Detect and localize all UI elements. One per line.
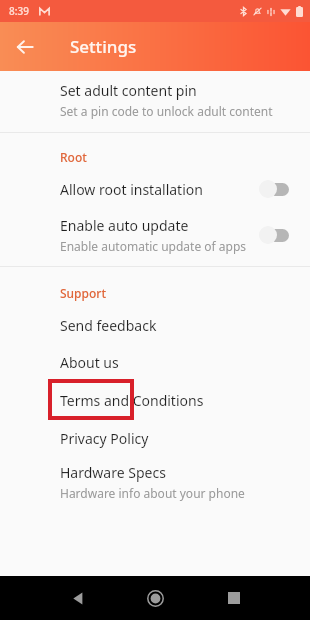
button[interactable]: Hardware Specs <box>0 463 310 501</box>
staticText: 8:39 <box>9 4 29 18</box>
button[interactable]: Terms and Conditions <box>0 391 310 410</box>
staticText: Privacy Policy <box>60 429 149 448</box>
button[interactable]: Allow root installation <box>0 179 310 199</box>
button[interactable]: Send feedback <box>0 316 310 335</box>
staticText: Root <box>60 149 87 165</box>
staticText: Set adult content pin <box>60 81 197 100</box>
staticText: Support <box>60 285 107 301</box>
staticText: Allow root installation <box>60 180 203 199</box>
button[interactable]: Back <box>60 580 96 616</box>
staticText: Send feedback <box>60 316 157 335</box>
staticText: Terms and Conditions <box>60 391 204 410</box>
button[interactable]: About us <box>0 353 310 372</box>
staticText: Enable automatic update of apps <box>60 238 247 254</box>
staticText: Set a pin code to unlock adult content <box>60 103 273 119</box>
button[interactable]: Back <box>8 30 42 64</box>
staticText: About us <box>60 353 119 372</box>
button[interactable]: Set adult content pin <box>0 81 310 119</box>
button[interactable]: Privacy Policy <box>0 429 310 448</box>
button[interactable]: Recent apps <box>216 580 252 616</box>
button[interactable]: Home <box>137 580 173 616</box>
staticText: Hardware Specs <box>60 463 166 482</box>
staticText: Enable auto update <box>60 216 189 235</box>
staticText: Hardware info about your phone <box>60 485 245 501</box>
button[interactable]: Enable auto update <box>0 216 310 254</box>
staticText: Settings <box>70 35 137 58</box>
